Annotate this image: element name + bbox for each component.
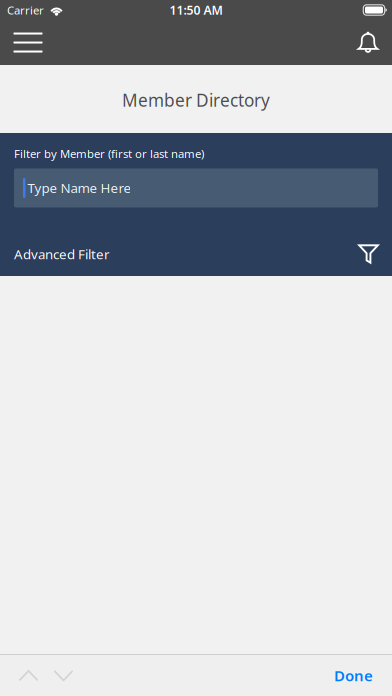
staticText: Filter by Member (first or last name)	[14, 146, 204, 161]
button[interactable]: Previous field	[11, 655, 46, 696]
button[interactable]: Advanced Filter	[0, 232, 392, 276]
staticText: Carrier	[7, 2, 44, 18]
button[interactable]: Next field	[46, 655, 81, 696]
staticText: 11:50 AM	[169, 2, 222, 18]
staticText: Type Name Here	[27, 179, 131, 197]
staticText: Advanced Filter	[14, 245, 110, 263]
staticText: Member Directory	[122, 88, 270, 112]
staticText: Done	[334, 665, 373, 686]
button[interactable]: Done	[320, 655, 387, 696]
button[interactable]: Menu	[6, 20, 50, 64]
button[interactable]: Notifications	[346, 20, 390, 64]
